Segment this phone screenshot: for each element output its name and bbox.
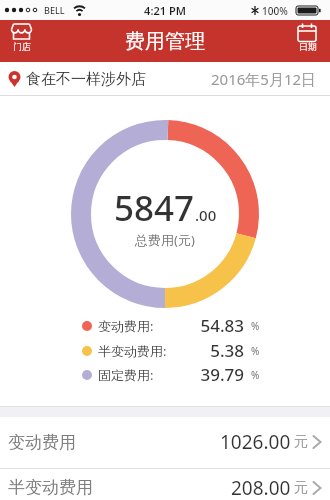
button[interactable]: 变动费用: [0, 417, 330, 467]
staticText: 元: [294, 479, 308, 497]
button[interactable]: 食在不一样涉外店: [0, 62, 330, 96]
staticText: 变动费用: [8, 432, 76, 453]
staticText: 变动费用:: [98, 317, 169, 335]
button[interactable]: 日期: [292, 20, 324, 62]
staticText: 食在不一样涉外店: [26, 70, 146, 89]
staticText: BELL: [44, 4, 65, 16]
staticText: 208.00: [231, 475, 291, 500]
staticText: 39.79: [169, 363, 244, 386]
staticText: 4:21 PM: [0, 3, 330, 18]
staticText: %: [251, 319, 260, 333]
staticText: 5.38: [169, 339, 244, 362]
staticText: 半变动费用:: [98, 342, 169, 360]
staticText: 54.83: [169, 314, 244, 337]
staticText: 日期: [299, 41, 317, 52]
staticText: 费用管理: [125, 29, 205, 54]
staticText: 2016年5月12日: [211, 69, 317, 89]
staticText: 固定费用:: [98, 366, 169, 384]
staticText: %: [251, 344, 260, 358]
staticText: %: [251, 368, 260, 382]
staticText: 5847: [114, 184, 195, 232]
staticText: 半变动费用: [8, 477, 93, 498]
button[interactable]: 半变动费用: [0, 469, 330, 500]
staticText: 门店: [13, 41, 31, 52]
staticText: 100%: [262, 4, 288, 18]
staticText: .00: [195, 205, 217, 225]
staticText: 总费用(元): [0, 231, 330, 249]
button[interactable]: 门店: [6, 20, 40, 62]
staticText: 元: [294, 433, 308, 451]
staticText: 1026.00: [220, 429, 291, 455]
